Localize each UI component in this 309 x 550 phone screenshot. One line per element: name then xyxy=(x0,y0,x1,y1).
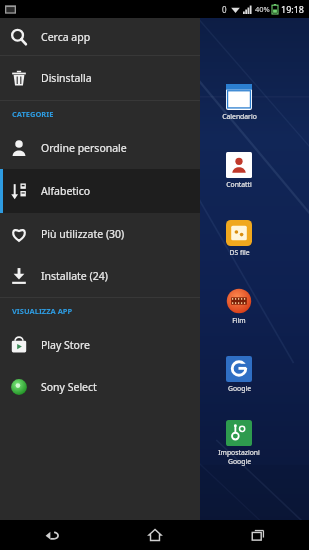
button[interactable]: Impostazioni xyxy=(213,420,265,466)
button[interactable]: Contatti xyxy=(213,152,265,189)
staticText: CATEGORIE xyxy=(12,109,54,119)
button[interactable]: Disinstalla xyxy=(0,56,200,100)
staticText: 19:18 xyxy=(281,3,305,15)
staticText: Disinstalla xyxy=(41,71,92,85)
staticText: Più utilizzate (30) xyxy=(41,227,125,241)
staticText: Calendario xyxy=(222,112,257,121)
staticText: Play Store xyxy=(41,338,90,352)
staticText: DS file xyxy=(229,248,250,257)
staticText: 0 xyxy=(222,4,227,15)
button[interactable]: olatrice xyxy=(152,84,204,121)
staticText: Google xyxy=(228,457,251,466)
button[interactable]: ebook xyxy=(152,288,204,325)
staticText: Ordine personale xyxy=(41,141,127,155)
button[interactable]: Cerca app xyxy=(0,18,200,55)
button[interactable]: Film xyxy=(213,288,265,325)
staticText: Film xyxy=(232,316,246,325)
button[interactable]: Play Store xyxy=(0,324,200,366)
button[interactable]: Ordine personale xyxy=(0,127,200,169)
staticText: Impostazioni xyxy=(218,448,260,457)
button[interactable]: cam xyxy=(152,220,204,257)
staticText: 40% xyxy=(255,4,270,14)
button[interactable]: Sony Select xyxy=(0,366,200,408)
button[interactable]: Alfabetico xyxy=(0,169,200,213)
staticText: Contatti xyxy=(226,180,252,189)
staticText: Installate (24) xyxy=(41,269,108,283)
button[interactable]: Calendario xyxy=(213,84,265,121)
button[interactable]: Google xyxy=(213,356,265,393)
button[interactable]: tazioni xyxy=(152,420,204,457)
staticText: Sony Select xyxy=(41,380,97,394)
button[interactable]: DS file xyxy=(213,220,265,257)
staticText: VISUALIZZA APP xyxy=(12,306,73,316)
button[interactable]: Installate (24) xyxy=(0,255,200,297)
staticText: Cerca app xyxy=(41,30,91,44)
button[interactable]: Back xyxy=(0,520,103,550)
button[interactable]: Home xyxy=(103,520,206,550)
button[interactable]: Recents xyxy=(206,520,309,550)
staticText: Alfabetico xyxy=(41,184,91,198)
staticText: Google xyxy=(228,384,251,393)
button[interactable]: Più utilizzate (30) xyxy=(0,213,200,255)
button[interactable]: ositore xyxy=(152,152,204,198)
button[interactable]: mail xyxy=(152,356,204,393)
